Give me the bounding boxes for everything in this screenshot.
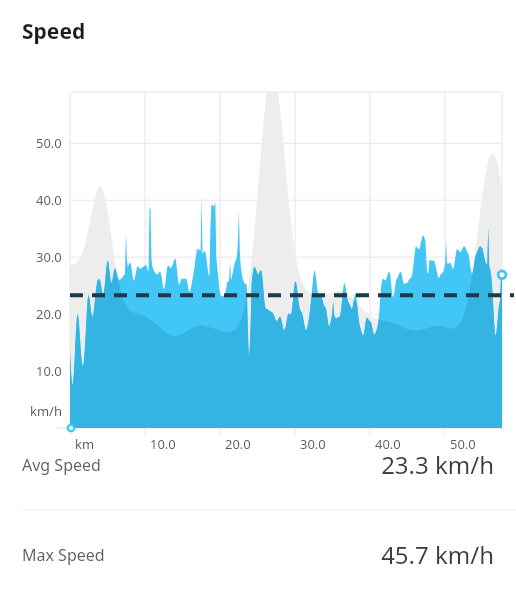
staticText: 10.0 <box>150 435 176 453</box>
staticText: km <box>75 435 95 453</box>
staticText: 10.0 <box>36 362 62 380</box>
staticText: 20.0 <box>36 305 62 323</box>
button[interactable]: Avg Speed <box>0 448 516 481</box>
staticText: 40.0 <box>375 435 401 453</box>
staticText: Avg Speed <box>22 454 101 476</box>
staticText: 23.3 km/h <box>381 448 494 481</box>
button[interactable]: Max Speed <box>0 538 516 571</box>
staticText: 20.0 <box>225 435 251 453</box>
staticText: Speed <box>22 17 86 46</box>
staticText: Max Speed <box>22 544 105 566</box>
staticText: 45.7 km/h <box>381 538 494 571</box>
staticText: 50.0 <box>450 435 476 453</box>
staticText: km/h <box>30 402 62 420</box>
staticText: 30.0 <box>36 248 62 266</box>
staticText: 50.0 <box>36 134 62 152</box>
staticText: 30.0 <box>300 435 326 453</box>
staticText: 40.0 <box>36 191 62 209</box>
